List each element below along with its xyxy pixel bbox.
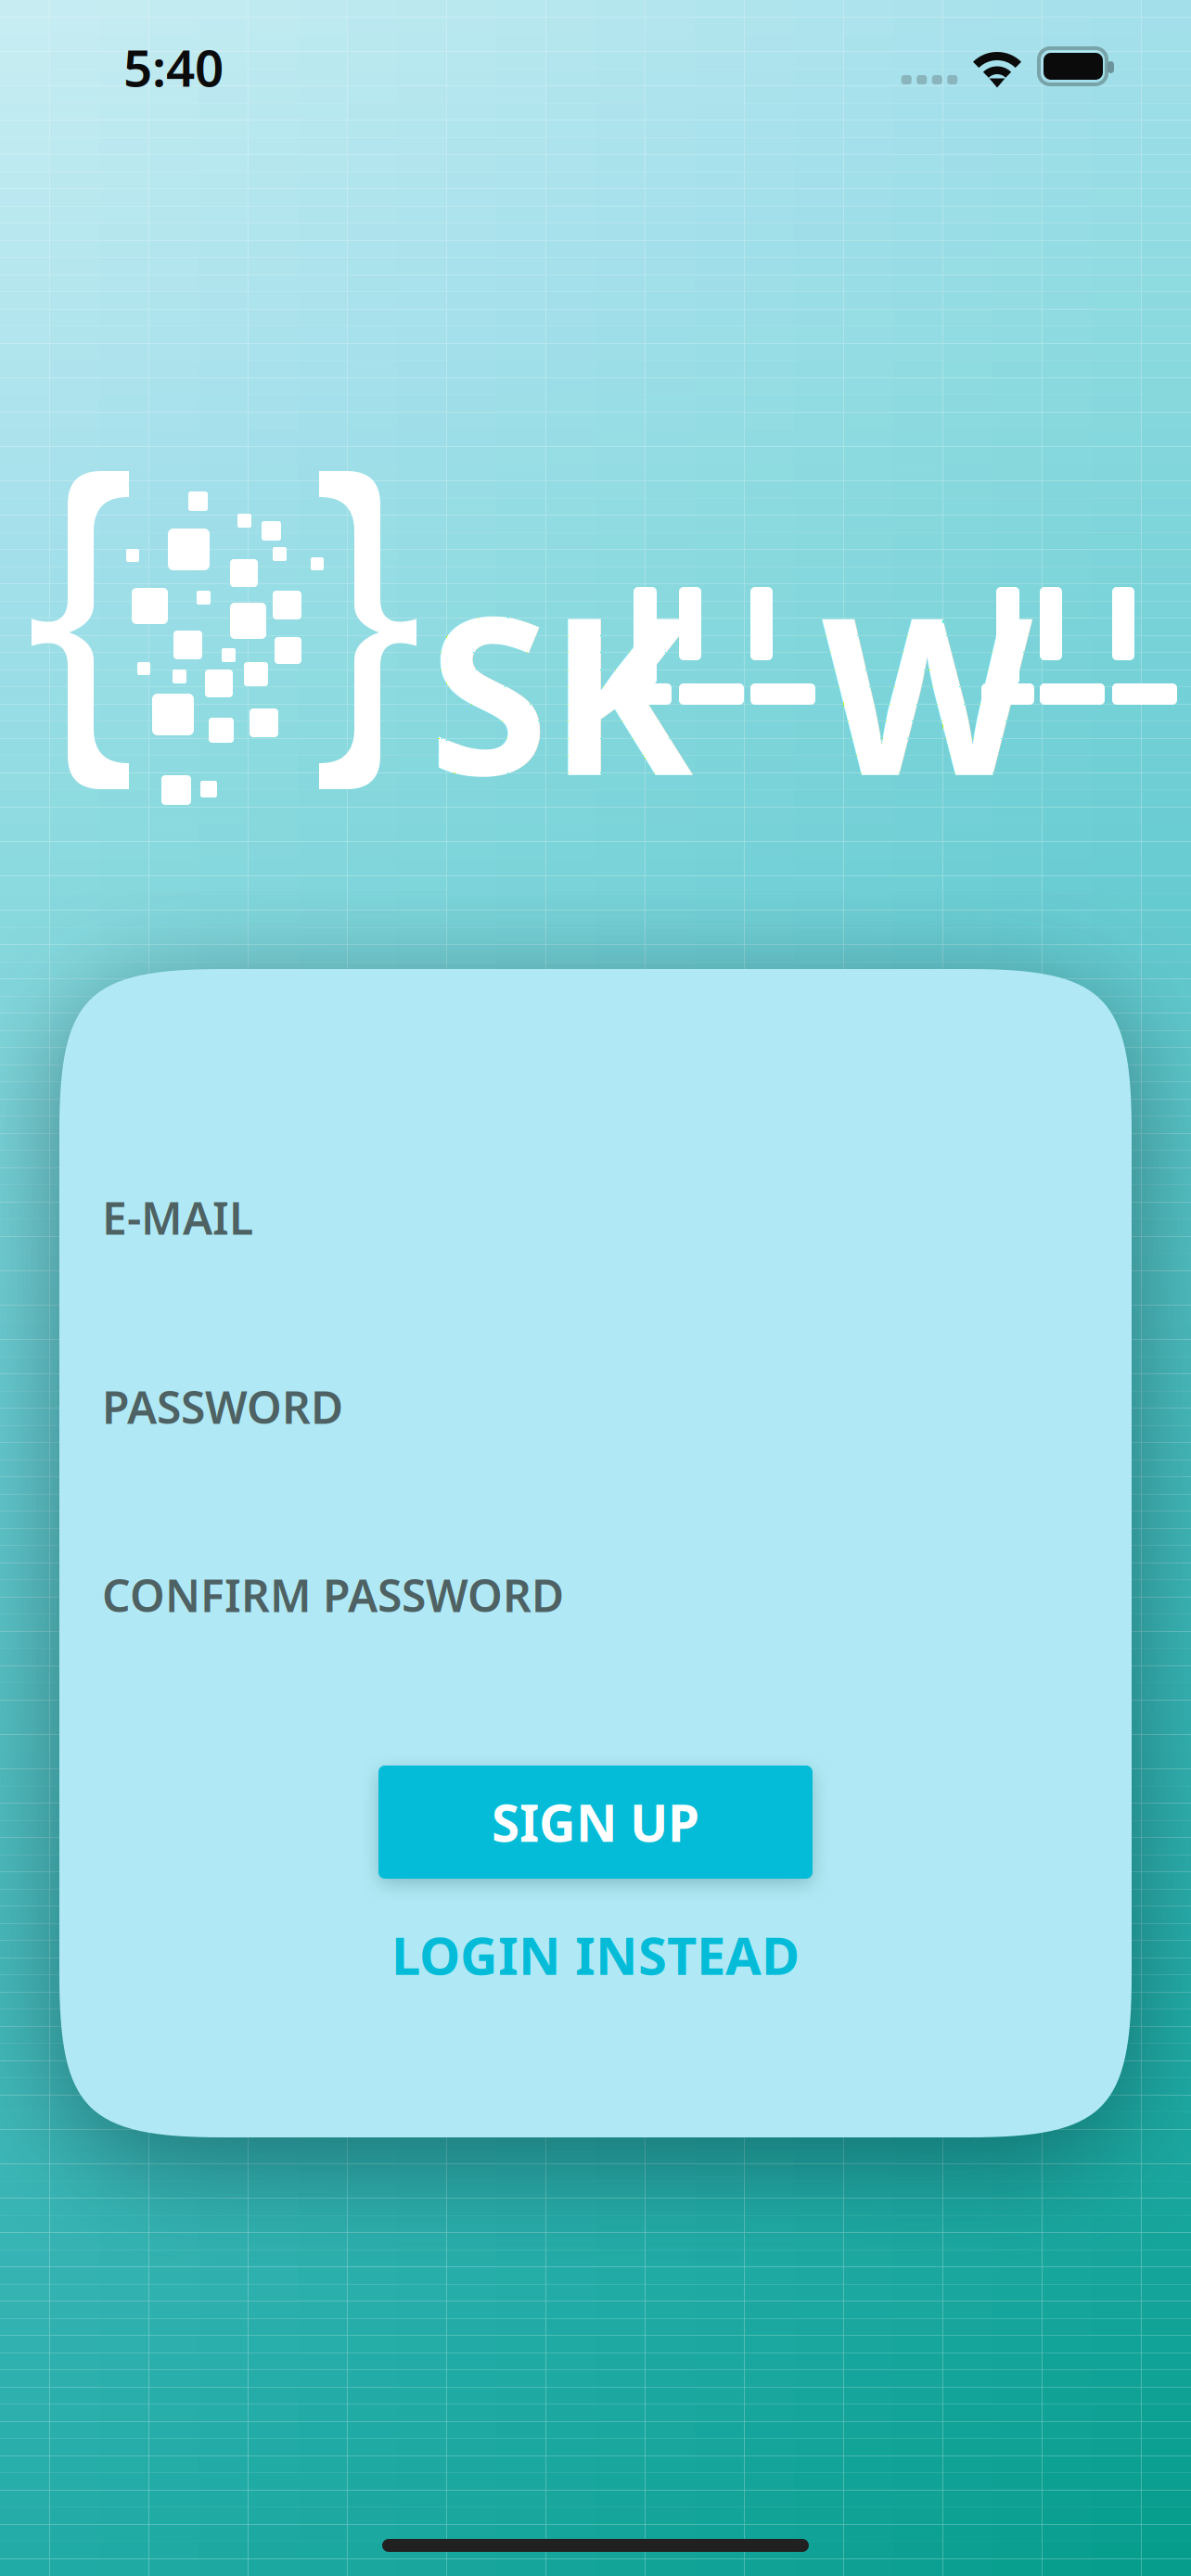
staticText: SK: [429, 546, 693, 835]
staticText: E-MAIL: [102, 1188, 253, 1247]
staticText: LOGIN INSTEAD: [391, 1920, 800, 1989]
staticText: CONFIRM PASSWORD: [102, 1565, 564, 1624]
button[interactable]: LOGIN INSTEAD: [59, 1925, 1132, 1984]
button[interactable]: SIGN UP: [378, 1766, 813, 1879]
staticText: W: [822, 546, 1032, 835]
staticText: PASSWORD: [102, 1377, 343, 1436]
staticText: SIGN UP: [492, 1788, 699, 1856]
staticText: 5:40: [123, 33, 224, 101]
